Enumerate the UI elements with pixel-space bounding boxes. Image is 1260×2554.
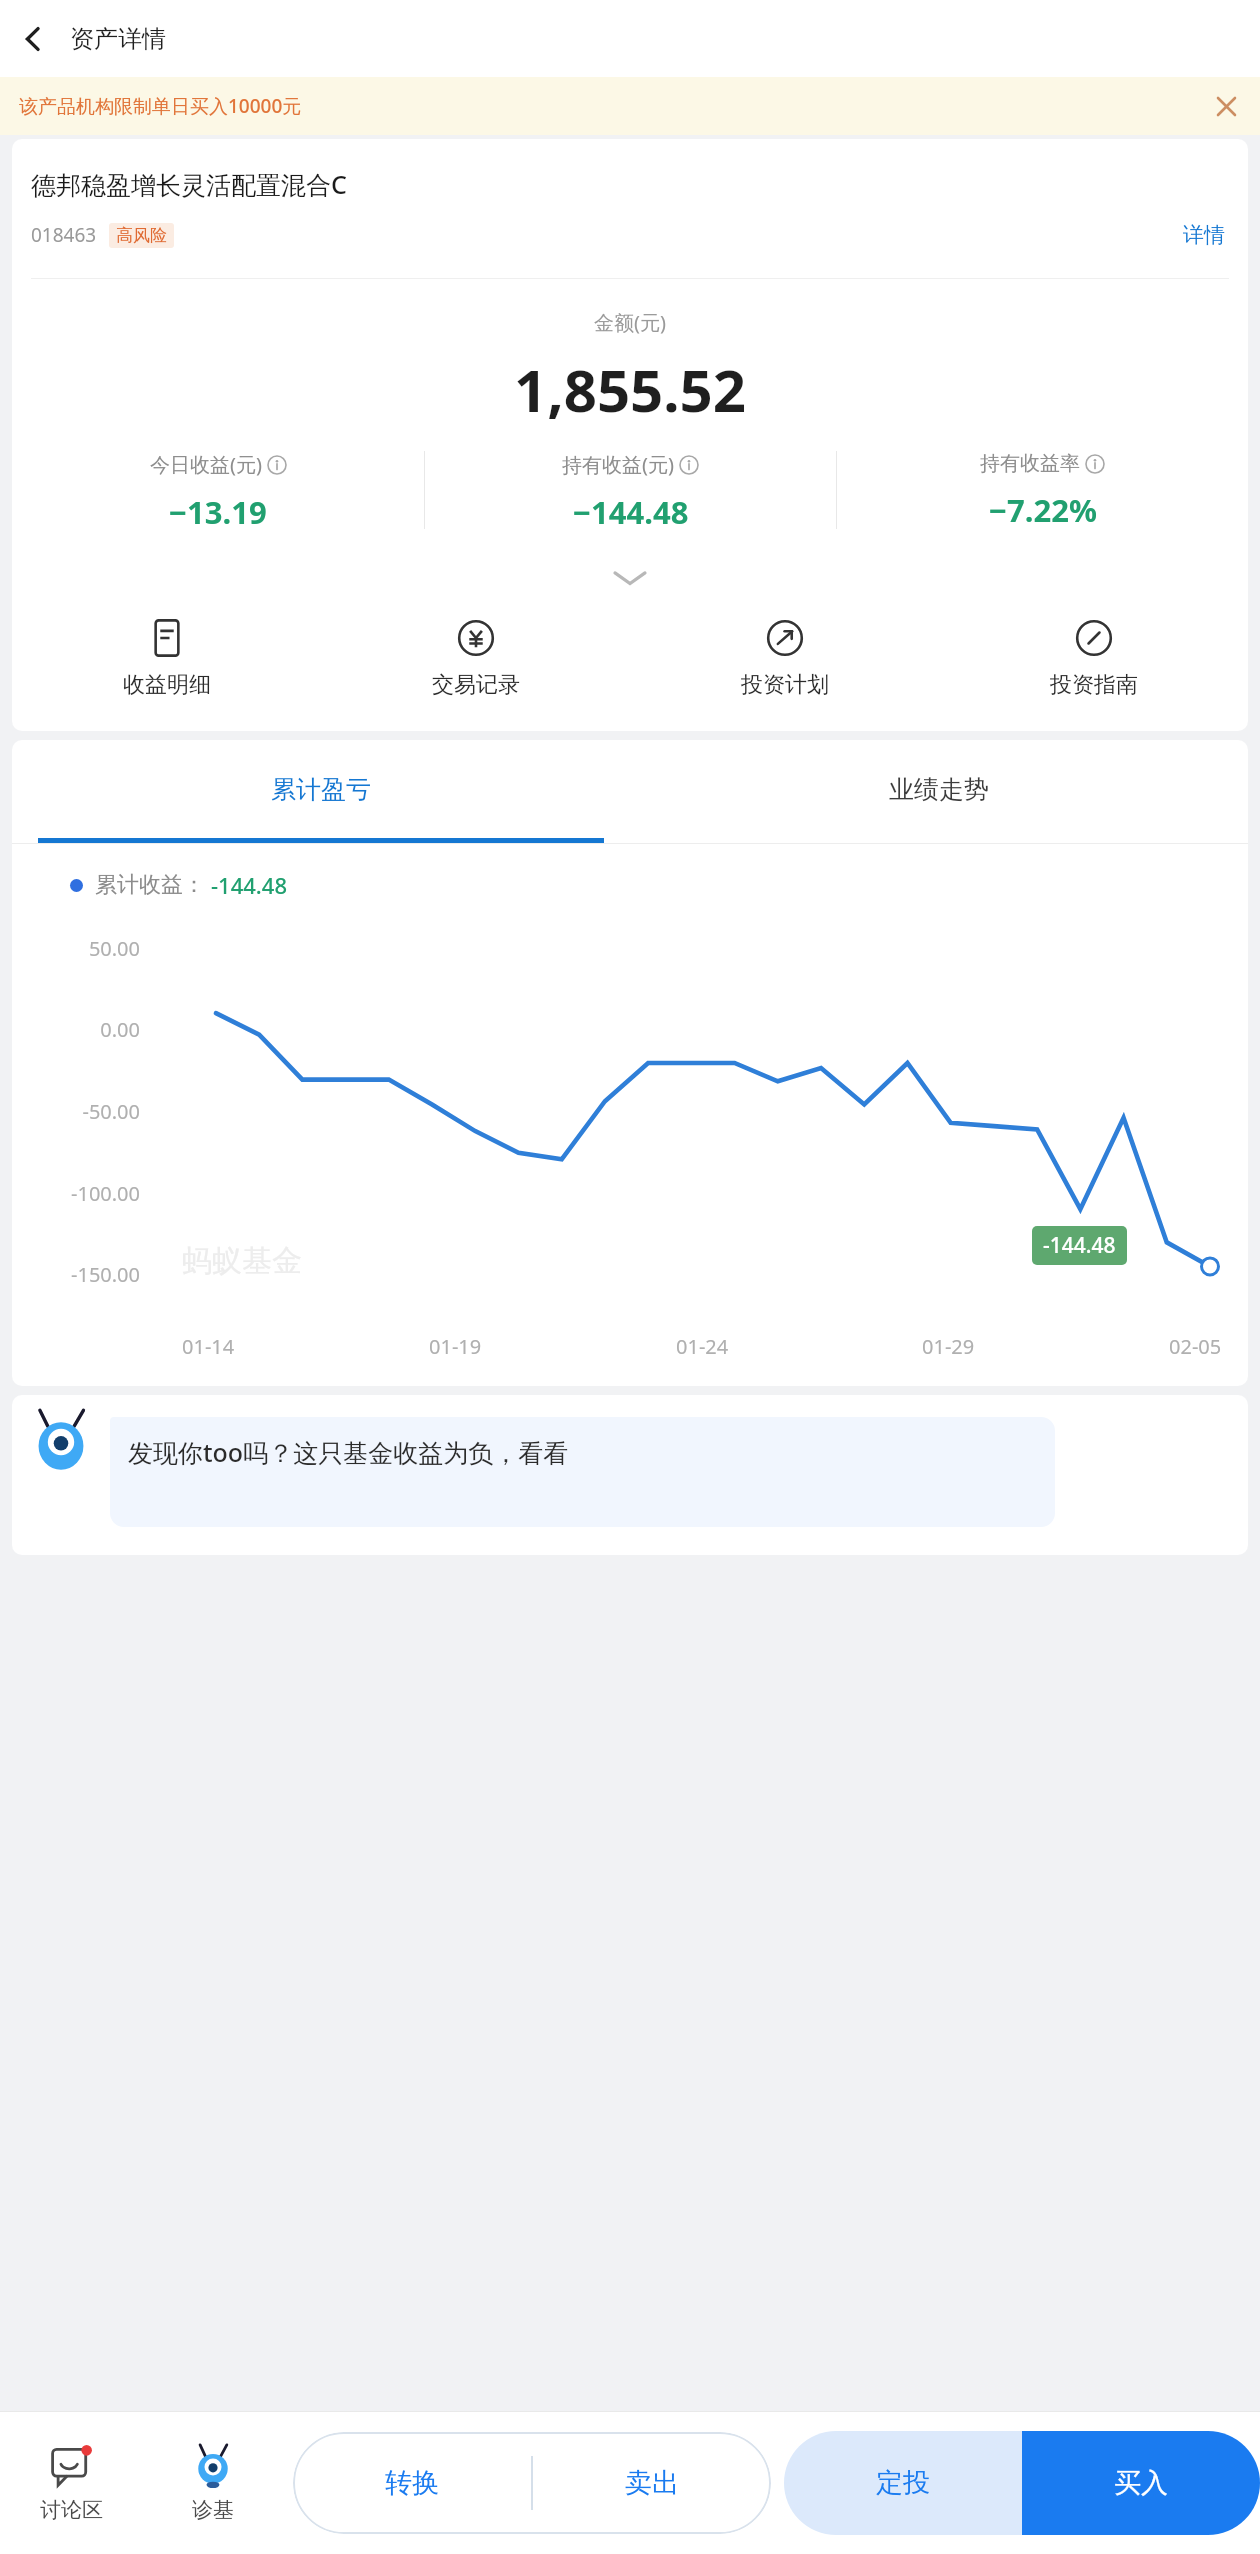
button[interactable]: 持有收益(元) [425,451,836,533]
staticText: 资产详情 [70,24,166,54]
button[interactable]: 诊基 [142,2412,284,2554]
button[interactable]: 今日收益(元) [12,451,424,533]
staticText: -100.00 [22,1180,140,1207]
staticText: 蚂蚁基金 [182,1242,302,1280]
button[interactable]: 业绩走势 [630,740,1248,838]
staticText: 01-14 [182,1333,235,1360]
button[interactable]: 返回 [8,14,58,64]
staticText: 持有收益(元) [562,451,674,478]
staticText: 累计收益： [95,871,205,899]
staticText: 0.00 [22,1016,140,1043]
button[interactable]: 关闭 [1205,85,1247,127]
button[interactable]: 发现你too吗？这只基金收益为负，看看 [110,1417,1055,1527]
button[interactable]: 买入 [1022,2431,1260,2535]
staticText: -144.48 [1043,1231,1116,1260]
staticText: 01-24 [676,1333,729,1360]
staticText: 发现你too吗？这只基金收益为负，看看 [128,1435,569,1469]
button[interactable]: 展开 [12,561,1248,595]
button[interactable]: 详情 [1179,218,1229,252]
button[interactable]: 投资指南 [939,617,1248,699]
staticText: -150.00 [22,1261,140,1288]
staticText: 讨论区 [40,2497,103,2523]
staticText: 卖出 [625,2466,679,2500]
staticText: −144.48 [573,491,689,533]
button[interactable]: 投资计划 [630,617,939,699]
staticText: 交易记录 [432,671,520,699]
staticText: 买入 [1114,2466,1168,2500]
staticText: -50.00 [22,1098,140,1125]
staticText: 01-29 [922,1333,975,1360]
staticText: −7.22% [989,489,1097,531]
button[interactable]: 交易记录 [321,617,630,699]
button[interactable]: 定投 [784,2431,1022,2535]
button[interactable]: 持有收益率 [837,451,1248,531]
staticText: 今日收益(元) [150,451,262,478]
staticText: 02-05 [1169,1333,1222,1360]
staticText: -144.48 [211,870,287,900]
staticText: 德邦稳盈增长灵活配置混合C [31,167,347,201]
button[interactable]: 收益明细 [12,617,321,699]
staticText: 业绩走势 [889,774,989,805]
staticText: 1,855.52 [12,350,1248,429]
staticText: 金额(元) [12,309,1248,336]
staticText: 50.00 [22,935,140,962]
staticText: 收益明细 [123,671,211,699]
staticText: 详情 [1183,222,1225,248]
staticText: 定投 [876,2466,930,2500]
staticText: 持有收益率 [980,451,1080,476]
staticText: 高风险 [116,225,167,246]
staticText: −13.19 [169,491,267,533]
staticText: 累计盈亏 [271,774,371,805]
button[interactable]: 卖出 [533,2432,771,2534]
staticText: 投资指南 [1050,671,1138,699]
staticText: 01-19 [429,1333,482,1360]
staticText: 转换 [385,2466,439,2500]
staticText: 018463 [31,222,97,248]
staticText: 诊基 [192,2497,234,2523]
staticText: 该产品机构限制单日买入10000元 [19,93,302,119]
button[interactable]: 讨论区 [0,2412,142,2554]
staticText: 投资计划 [741,671,829,699]
button[interactable]: 转换 [293,2432,531,2534]
button[interactable]: 累计盈亏 [12,740,630,838]
